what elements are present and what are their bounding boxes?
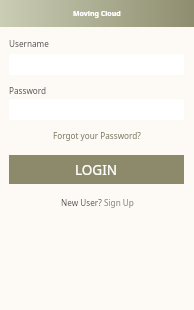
button[interactable]: Sign Up	[104, 197, 134, 208]
button[interactable]: LOGIN	[9, 155, 184, 184]
staticText: Password	[9, 85, 47, 96]
staticText: New User?	[61, 197, 104, 208]
staticText: Moving Cloud	[73, 9, 121, 19]
button[interactable]: Forgot your Password?	[53, 130, 141, 141]
staticText: Username	[9, 38, 49, 49]
staticText: LOGIN	[75, 161, 118, 179]
